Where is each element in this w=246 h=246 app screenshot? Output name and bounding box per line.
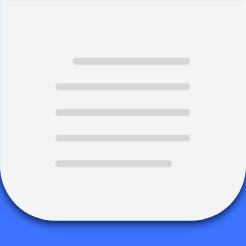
button[interactable]: Open document bbox=[0, 0, 246, 246]
